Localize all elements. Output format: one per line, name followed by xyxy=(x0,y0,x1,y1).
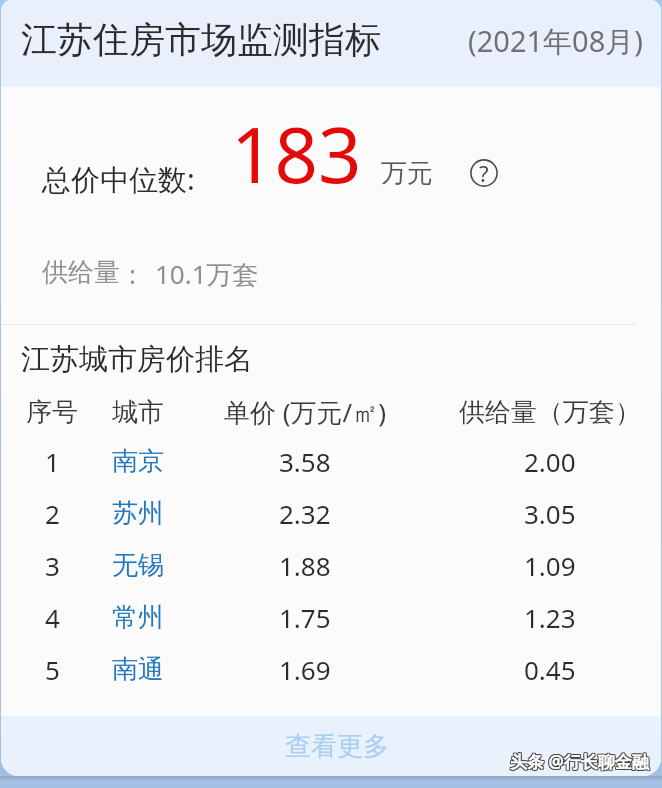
staticText: : xyxy=(129,256,136,291)
staticText: 序号 xyxy=(26,396,78,429)
staticText: 头条 @行长聊金融 xyxy=(509,749,648,772)
staticText: 江苏城市房价排名 xyxy=(21,341,253,378)
button[interactable]: Help xyxy=(470,159,498,187)
staticText: 183 xyxy=(231,102,362,206)
staticText: 1.88 xyxy=(279,548,331,583)
staticText: 头条 @行长聊金融 xyxy=(510,751,649,774)
staticText: 头条 @行长聊金融 xyxy=(511,751,650,774)
button[interactable]: 4 xyxy=(1,595,661,639)
button[interactable]: 序号 xyxy=(1,390,661,434)
staticText: (2021年08月) xyxy=(468,21,643,61)
staticText: 3.05 xyxy=(524,496,576,531)
staticText: 城市 xyxy=(112,396,164,429)
staticText: 4 xyxy=(45,600,60,635)
staticText: 南通 xyxy=(112,653,164,686)
staticText: 2.00 xyxy=(524,444,576,479)
staticText: 1.09 xyxy=(524,548,576,583)
staticText: 2.32 xyxy=(279,496,331,531)
staticText: 供给量 xyxy=(42,256,120,289)
staticText: 10.1万套 xyxy=(155,256,259,292)
staticText: 头条 @行长聊金融 xyxy=(511,750,650,773)
button[interactable]: 查看更多 xyxy=(1,716,661,776)
staticText: 总价中位数: xyxy=(42,159,195,199)
staticText: 头条 @行长聊金融 xyxy=(509,751,648,774)
staticText: 1.69 xyxy=(279,652,331,687)
button[interactable]: 3 xyxy=(1,543,661,587)
staticText: ? xyxy=(479,158,489,186)
staticText: 1.23 xyxy=(524,600,576,635)
staticText: 头条 @行长聊金融 xyxy=(510,750,649,773)
staticText: 头条 @行长聊金融 xyxy=(511,749,650,772)
staticText: 头条 @行长聊金融 xyxy=(510,749,649,772)
staticText: 苏州 xyxy=(112,497,164,530)
staticText: 1.75 xyxy=(279,600,331,635)
staticText: 3.58 xyxy=(279,444,331,479)
button[interactable]: 1 xyxy=(1,439,661,483)
staticText: 5 xyxy=(45,652,60,687)
staticText: 1 xyxy=(45,444,60,479)
staticText: 0.45 xyxy=(524,652,576,687)
button[interactable]: 2 xyxy=(1,491,661,535)
staticText: 2 xyxy=(45,496,60,531)
staticText: 单价 (万元/㎡) xyxy=(224,394,387,430)
staticText: 南京 xyxy=(112,445,164,478)
staticText: 无锡 xyxy=(112,549,164,582)
button[interactable]: 5 xyxy=(1,647,661,691)
staticText: 供给量（万套） xyxy=(459,396,641,429)
staticText: 常州 xyxy=(112,601,164,634)
staticText: 头条 @行长聊金融 xyxy=(509,750,648,773)
staticText: 查看更多 xyxy=(285,730,389,763)
staticText: 江苏住房市场监测指标 xyxy=(21,17,381,62)
staticText: 3 xyxy=(45,548,60,583)
staticText: 万元 xyxy=(381,157,433,190)
